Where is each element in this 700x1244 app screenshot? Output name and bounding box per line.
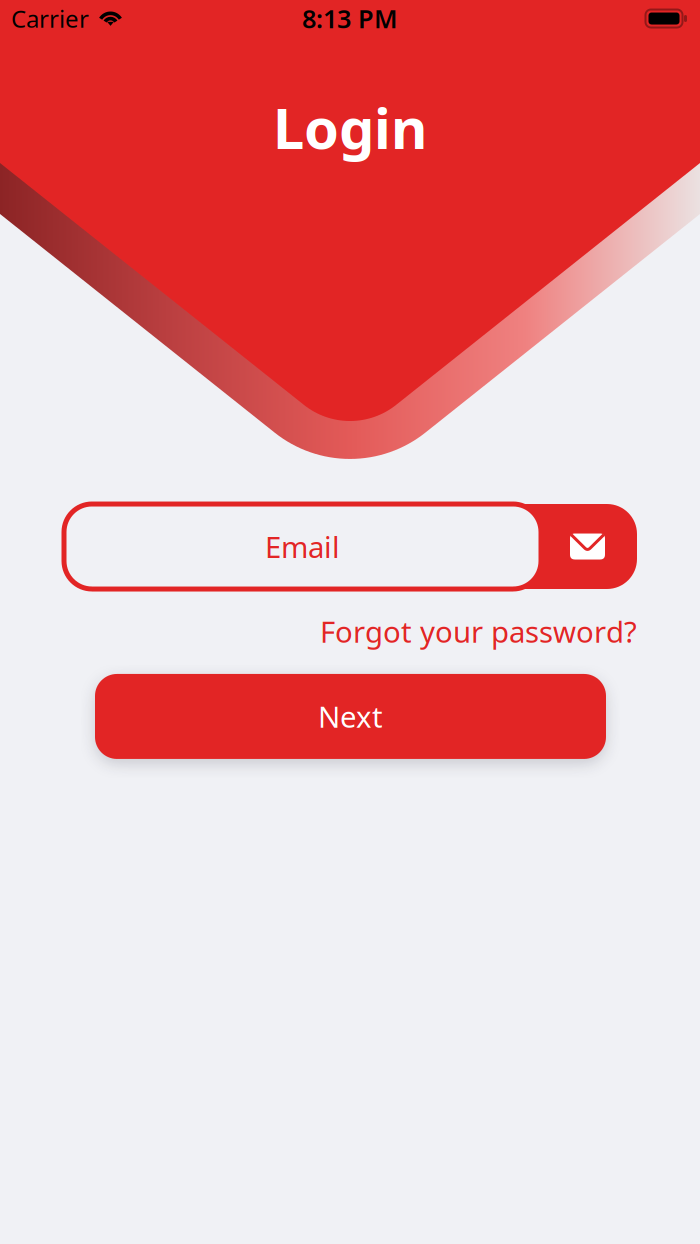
staticText: Forgot your password? xyxy=(320,612,637,651)
button[interactable]: Next xyxy=(95,674,606,759)
staticText: 8:13 PM xyxy=(302,2,398,35)
staticText: Login xyxy=(273,90,427,164)
button[interactable]: Forgot your password? xyxy=(320,612,637,651)
staticText: Next xyxy=(318,697,383,736)
staticText: Carrier xyxy=(11,3,89,34)
button[interactable]: Email xyxy=(64,504,541,589)
staticText: Email xyxy=(265,527,340,566)
button[interactable]: Submit email xyxy=(64,504,637,589)
